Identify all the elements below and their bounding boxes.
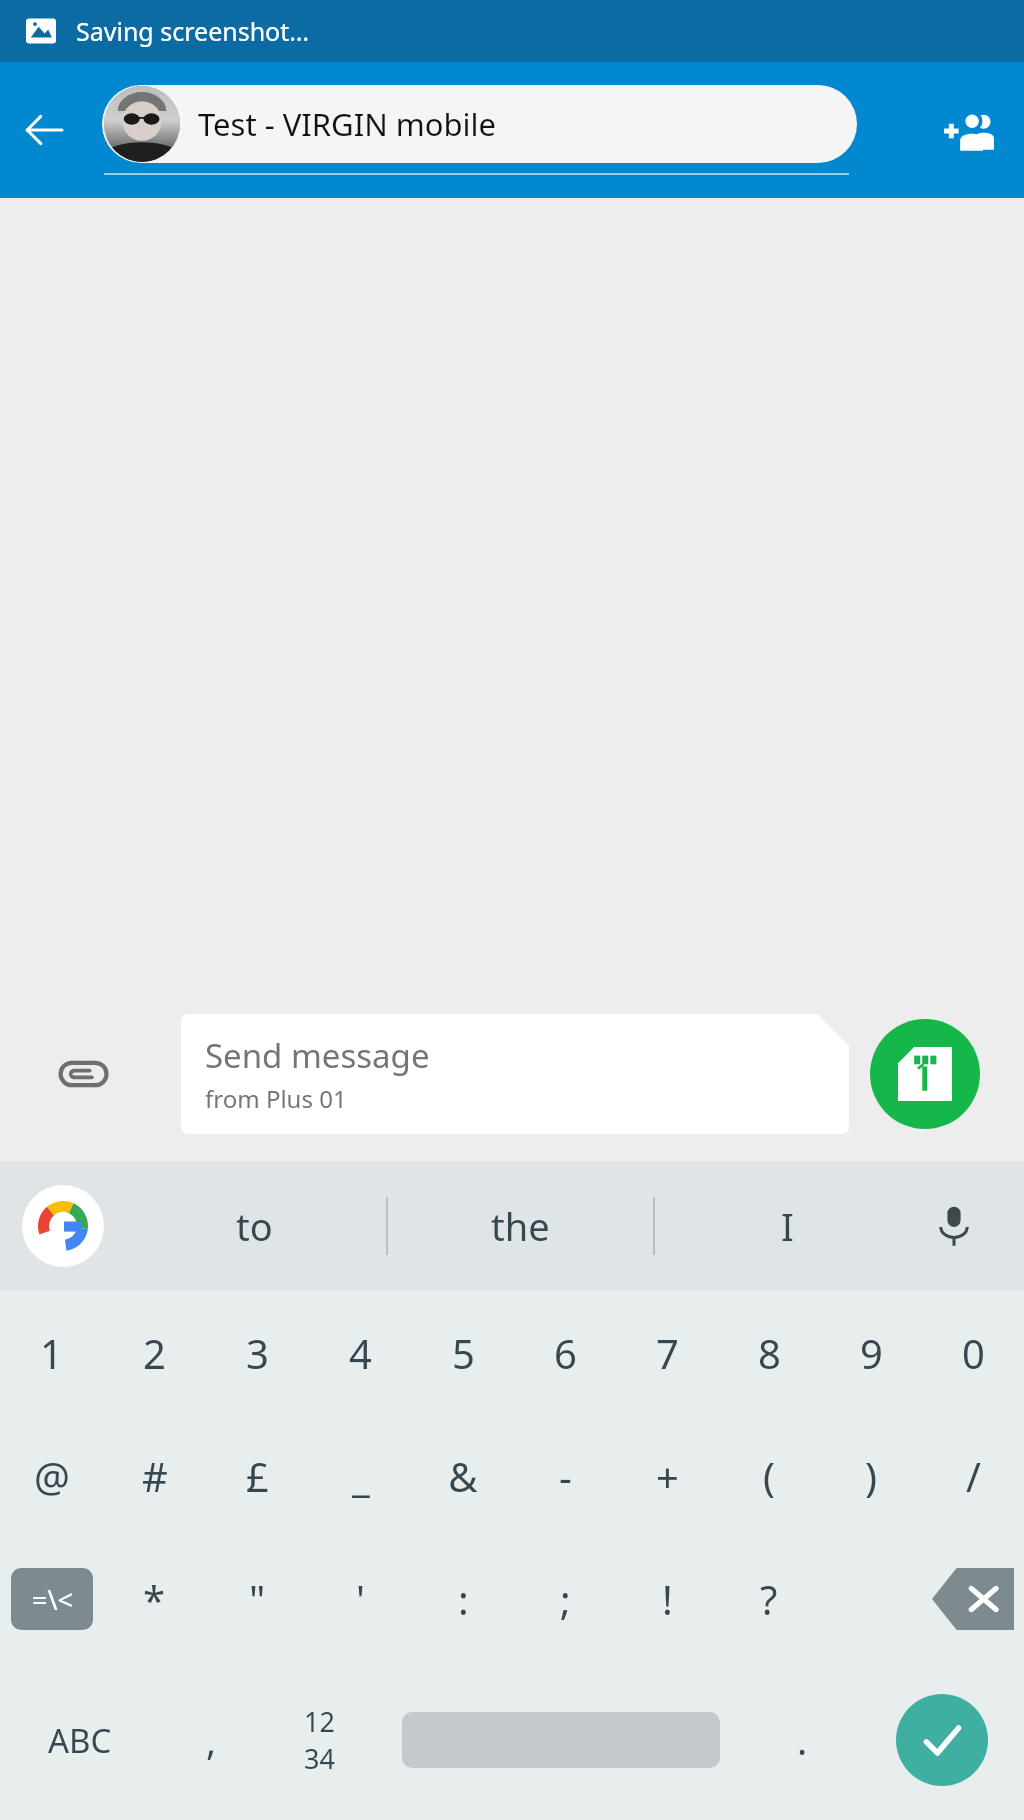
- staticText: @: [34, 1449, 70, 1503]
- staticText: 6: [554, 1326, 577, 1380]
- button[interactable]: ;: [514, 1537, 616, 1660]
- button[interactable]: &: [412, 1414, 514, 1537]
- staticText: 4: [349, 1326, 372, 1380]
- staticText: !: [662, 1572, 673, 1626]
- button[interactable]: :: [412, 1537, 514, 1660]
- staticText: (: [763, 1449, 775, 1503]
- button[interactable]: .: [746, 1660, 859, 1820]
- staticText: 3: [246, 1326, 269, 1380]
- staticText: ;: [560, 1572, 571, 1626]
- staticText: 1: [40, 1326, 63, 1380]
- button[interactable]: ): [820, 1414, 922, 1537]
- staticText: 8: [758, 1326, 781, 1380]
- button[interactable]: 9: [820, 1291, 922, 1414]
- button[interactable]: ': [309, 1537, 412, 1660]
- button[interactable]: ?: [718, 1537, 820, 1660]
- staticText: +: [656, 1449, 679, 1503]
- button[interactable]: Numbers: [263, 1660, 376, 1820]
- staticText: ?: [760, 1572, 778, 1626]
- button[interactable]: Test - VIRGIN mobile: [102, 85, 857, 163]
- staticText: :: [458, 1572, 469, 1626]
- button[interactable]: £: [206, 1414, 309, 1537]
- button[interactable]: 5: [412, 1291, 514, 1414]
- button[interactable]: 8: [718, 1291, 820, 1414]
- staticText: *: [143, 1572, 166, 1626]
- button[interactable]: 7: [616, 1291, 718, 1414]
- button[interactable]: Back: [0, 86, 88, 174]
- button[interactable]: #: [103, 1414, 206, 1537]
- button[interactable]: !: [616, 1537, 718, 1660]
- button[interactable]: 6: [514, 1291, 616, 1414]
- staticText: 0: [962, 1326, 985, 1380]
- button[interactable]: ,: [160, 1660, 263, 1820]
- staticText: £: [246, 1449, 269, 1503]
- button[interactable]: Space: [376, 1660, 746, 1820]
- staticText: 12: [304, 1703, 335, 1740]
- staticText: ABC: [48, 1718, 112, 1763]
- button[interactable]: Send message: [181, 1014, 849, 1134]
- staticText: _: [352, 1449, 370, 1503]
- staticText: ': [356, 1572, 365, 1626]
- staticText: 5: [452, 1326, 475, 1380]
- staticText: the: [491, 1200, 550, 1252]
- button[interactable]: Google: [22, 1185, 104, 1267]
- staticText: -: [559, 1449, 572, 1503]
- staticText: ": [249, 1572, 266, 1626]
- staticText: 2: [143, 1326, 166, 1380]
- staticText: from Plus 01: [205, 1082, 347, 1115]
- button[interactable]: Symbols: [0, 1537, 103, 1660]
- button[interactable]: ABC: [0, 1660, 160, 1820]
- button[interactable]: _: [309, 1414, 412, 1537]
- button[interactable]: Send: [870, 1019, 980, 1129]
- button[interactable]: to: [122, 1161, 386, 1291]
- staticText: .: [797, 1714, 808, 1766]
- staticText: &: [448, 1449, 478, 1503]
- staticText: /: [966, 1449, 981, 1503]
- staticText: to: [236, 1200, 273, 1252]
- button[interactable]: Backspace: [922, 1537, 1024, 1660]
- staticText: Test - VIRGIN mobile: [198, 103, 497, 145]
- staticText: Send message: [205, 1033, 430, 1078]
- staticText: ,: [206, 1714, 217, 1766]
- staticText: I: [781, 1200, 794, 1252]
- button[interactable]: -: [514, 1414, 616, 1537]
- staticText: =\<: [32, 1581, 73, 1618]
- button[interactable]: 1: [0, 1291, 103, 1414]
- button[interactable]: the: [388, 1161, 653, 1291]
- button[interactable]: Voice input: [914, 1186, 994, 1266]
- staticText: Saving screenshot…: [76, 14, 310, 48]
- button[interactable]: (: [718, 1414, 820, 1537]
- button[interactable]: *: [103, 1537, 206, 1660]
- button[interactable]: ": [206, 1537, 309, 1660]
- button[interactable]: 4: [309, 1291, 412, 1414]
- button[interactable]: I: [655, 1161, 920, 1291]
- button[interactable]: Enter: [859, 1660, 1024, 1820]
- button[interactable]: 3: [206, 1291, 309, 1414]
- button[interactable]: 2: [103, 1291, 206, 1414]
- staticText: 34: [304, 1740, 335, 1777]
- button[interactable]: /: [922, 1414, 1024, 1537]
- button[interactable]: 0: [922, 1291, 1024, 1414]
- staticText: ): [865, 1449, 877, 1503]
- staticText: 7: [656, 1326, 679, 1380]
- button[interactable]: Add people: [914, 75, 1024, 185]
- staticText: #: [142, 1449, 168, 1503]
- staticText: 9: [860, 1326, 883, 1380]
- button[interactable]: @: [0, 1414, 103, 1537]
- button[interactable]: Attach: [38, 1029, 128, 1119]
- button[interactable]: +: [616, 1414, 718, 1537]
